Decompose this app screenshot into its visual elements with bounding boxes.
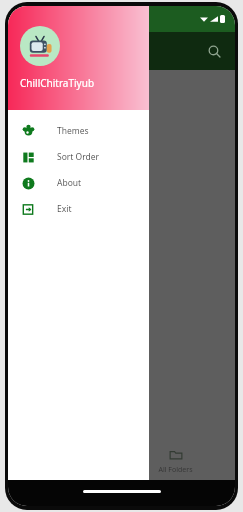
staticText: Themes: [57, 125, 89, 137]
button[interactable]: Themes: [8, 118, 149, 144]
staticText: Sort Order: [57, 151, 100, 163]
staticText: About: [57, 177, 82, 189]
button[interactable]: About: [8, 170, 149, 196]
button[interactable]: Exit: [8, 196, 149, 222]
staticText: 12:53: [18, 14, 39, 25]
button[interactable]: Search: [201, 38, 227, 64]
staticText: ChillChitraTiyub: [20, 76, 95, 90]
staticText: Exit: [57, 203, 72, 215]
button[interactable]: All Folders: [158, 448, 193, 475]
button[interactable]: Sort Order: [8, 144, 149, 170]
staticText: All Folders: [158, 465, 193, 475]
button[interactable]: App logo: [20, 26, 60, 66]
